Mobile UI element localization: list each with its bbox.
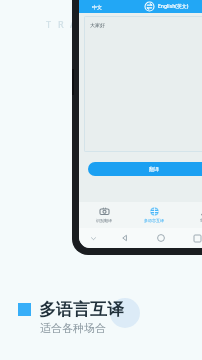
staticText: 多语言互译 [144,218,164,223]
button[interactable]: 大家好 [84,16,202,152]
button[interactable]: Home [143,234,179,242]
button[interactable]: 识别翻译 [79,202,129,228]
staticText: R [58,18,64,30]
button[interactable]: English(英文) [158,3,189,10]
button[interactable]: Swap languages [144,1,155,12]
button[interactable]: 我的 [179,202,202,228]
button[interactable]: Recent apps [179,235,202,242]
staticText: N [82,18,89,30]
button[interactable]: 翻译 [88,162,202,176]
button[interactable]: 中文 [92,4,102,10]
staticText: 多语言互译 [39,299,124,320]
staticText: 识别翻译 [96,218,112,223]
staticText: 适合各种场合 [40,321,106,335]
staticText: 大家好 [90,22,105,28]
staticText: A [70,18,76,30]
button[interactable]: Back [107,234,143,242]
button[interactable]: 多语言互译 [129,202,179,228]
staticText: 翻译 [149,166,159,172]
staticText: T [46,18,52,30]
staticText: 我的 [200,218,202,223]
